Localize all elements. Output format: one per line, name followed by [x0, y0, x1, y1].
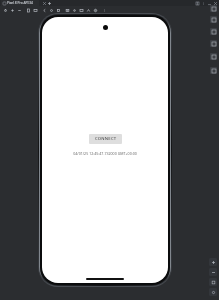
button[interactable]: Display mode	[78, 6, 85, 15]
staticText: CONNECT	[95, 136, 117, 142]
button[interactable]: Extended controls	[210, 53, 217, 60]
button[interactable]: More options	[200, 0, 206, 6]
button[interactable]: Minimize	[206, 0, 212, 6]
button[interactable]: New tab	[47, 1, 52, 6]
button[interactable]: More	[101, 6, 108, 15]
button[interactable]: Record screen	[71, 6, 78, 15]
staticText: 04/01/25 12:45:47.732000 GMT+00:00	[73, 151, 137, 156]
button[interactable]: Settings	[92, 6, 99, 15]
staticText: Pixel 8 Pro API 34	[7, 1, 33, 5]
button[interactable]: Overview	[55, 6, 62, 15]
button[interactable]: Split	[194, 0, 200, 6]
button[interactable]: CONNECT	[89, 134, 122, 144]
button[interactable]: Rotate left	[25, 6, 32, 15]
button[interactable]: Volume up	[9, 6, 16, 15]
button[interactable]: Zoom out	[209, 268, 217, 276]
button[interactable]: Rotate right	[32, 6, 39, 15]
button[interactable]: Close window	[212, 0, 218, 6]
button[interactable]: Zoom in	[209, 258, 217, 266]
button[interactable]: Screenshot	[64, 6, 71, 15]
button[interactable]: Volume down	[16, 6, 23, 15]
button[interactable]: Logcat	[210, 28, 217, 35]
button[interactable]: Power	[2, 6, 9, 15]
button[interactable]: Home	[48, 6, 55, 15]
button[interactable]: Folding	[85, 6, 92, 15]
button[interactable]: Zoom to fit	[209, 278, 217, 286]
button[interactable]: Actual size	[209, 288, 217, 296]
button[interactable]: Pixel 8 Pro API 34	[1, 0, 39, 6]
button[interactable]: Back	[41, 6, 48, 15]
button[interactable]: Emulator controls	[210, 40, 217, 47]
button[interactable]: Close tab	[42, 1, 47, 6]
button[interactable]: Layout Inspector	[210, 5, 217, 12]
button[interactable]: Snapshots	[210, 67, 217, 74]
button[interactable]: Device Explorer	[210, 16, 217, 23]
